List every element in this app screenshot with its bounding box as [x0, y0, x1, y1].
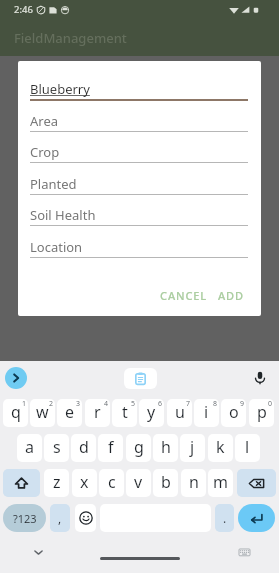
staticText: 9: [240, 399, 245, 409]
staticText: 3: [76, 399, 81, 409]
staticText: b: [161, 471, 171, 493]
staticText: j: [190, 436, 195, 458]
button[interactable]: x: [72, 469, 97, 497]
staticText: 5: [131, 399, 136, 409]
staticText: v: [134, 471, 143, 493]
staticText: f: [108, 436, 114, 458]
button[interactable]: g: [126, 434, 151, 462]
staticText: Crop: [30, 143, 60, 161]
staticText: 2: [49, 399, 54, 409]
staticText: 0: [268, 399, 273, 409]
button[interactable]: c: [99, 469, 124, 497]
staticText: Blueberry: [30, 80, 90, 98]
staticText: y: [147, 401, 156, 423]
staticText: r: [94, 401, 101, 423]
button[interactable]: Hide keyboard: [28, 542, 48, 562]
button[interactable]: k: [208, 434, 233, 462]
staticText: ,: [58, 510, 62, 526]
staticText: 7: [186, 399, 191, 409]
staticText: m: [213, 471, 228, 493]
button[interactable]: f: [98, 434, 123, 462]
button[interactable]: More suggestions: [5, 367, 27, 389]
staticText: s: [53, 436, 61, 458]
button[interactable]: CANCEL: [155, 282, 213, 309]
button[interactable]: a: [17, 434, 42, 462]
staticText: h: [161, 436, 171, 458]
staticText: w: [36, 401, 49, 423]
staticText: Location: [30, 238, 83, 256]
button[interactable]: u: [167, 399, 192, 427]
staticText: Planted: [30, 175, 77, 193]
staticText: n: [189, 471, 199, 493]
button[interactable]: Shift: [3, 469, 40, 497]
button[interactable]: s: [44, 434, 69, 462]
button[interactable]: h: [153, 434, 178, 462]
button[interactable]: i: [194, 399, 219, 427]
staticText: u: [175, 401, 185, 423]
staticText: e: [65, 401, 75, 423]
button[interactable]: o: [221, 399, 246, 427]
button[interactable]: r: [85, 399, 110, 427]
button[interactable]: .: [215, 504, 234, 532]
button[interactable]: m: [208, 469, 233, 497]
button[interactable]: d: [71, 434, 96, 462]
staticText: 2:46: [14, 3, 33, 16]
button[interactable]: e: [57, 399, 82, 427]
button[interactable]: ?123: [3, 504, 46, 532]
button[interactable]: y: [139, 399, 164, 427]
staticText: i: [204, 401, 209, 423]
button[interactable]: j: [180, 434, 205, 462]
staticText: .: [223, 510, 227, 526]
staticText: d: [79, 436, 89, 458]
staticText: ADD: [218, 288, 244, 303]
staticText: FieldManagement: [14, 29, 127, 47]
button[interactable]: ADD: [213, 282, 249, 309]
staticText: 6: [158, 399, 163, 409]
staticText: 4: [104, 399, 109, 409]
button[interactable]: Switch keyboard: [236, 544, 252, 560]
button[interactable]: v: [126, 469, 151, 497]
staticText: o: [229, 401, 239, 423]
staticText: g: [134, 436, 144, 458]
button[interactable]: n: [181, 469, 206, 497]
staticText: 8: [213, 399, 218, 409]
staticText: l: [245, 436, 250, 458]
staticText: a: [25, 436, 34, 458]
button[interactable]: t: [112, 399, 137, 427]
button[interactable]: ,: [50, 504, 70, 532]
staticText: q: [11, 401, 21, 423]
staticText: ?123: [13, 511, 37, 526]
button[interactable]: Backspace: [237, 469, 276, 497]
button[interactable]: l: [235, 434, 260, 462]
staticText: Soil Health: [30, 206, 96, 224]
button[interactable]: z: [44, 469, 69, 497]
staticText: z: [53, 471, 61, 493]
button[interactable]: Voice input: [250, 368, 270, 388]
staticText: 1: [22, 399, 27, 409]
staticText: k: [216, 436, 225, 458]
button[interactable]: w: [30, 399, 55, 427]
button[interactable]: Enter: [238, 504, 275, 532]
button[interactable]: q: [3, 399, 28, 427]
staticText: Area: [30, 112, 59, 130]
button[interactable]: Emoji: [75, 504, 96, 532]
staticText: CANCEL: [160, 288, 208, 303]
staticText: p: [257, 401, 267, 423]
button[interactable]: Clipboard: [124, 368, 157, 389]
staticText: t: [122, 401, 128, 423]
button[interactable]: b: [153, 469, 178, 497]
button[interactable]: p: [249, 399, 274, 427]
staticText: x: [80, 471, 89, 493]
staticText: c: [108, 471, 116, 493]
